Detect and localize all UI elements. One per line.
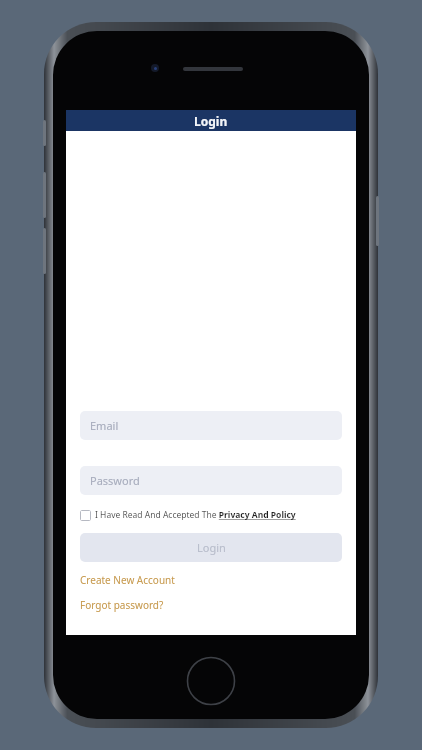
button[interactable]: Forgot password? [80, 598, 164, 612]
button[interactable]: Login [80, 533, 342, 562]
staticText: Password [90, 473, 140, 488]
button[interactable]: Email [80, 411, 342, 440]
button[interactable]: Create New Account [80, 573, 175, 587]
staticText: Forgot password? [80, 598, 164, 612]
staticText: Login [197, 540, 226, 555]
staticText: Login [194, 113, 228, 129]
button[interactable]: I Have Read And Accepted The Privacy And… [80, 507, 342, 523]
button[interactable]: Password [80, 466, 342, 495]
staticText: I Have Read And Accepted The Privacy And… [95, 509, 296, 521]
staticText: Create New Account [80, 573, 175, 587]
staticText: Email [90, 418, 119, 433]
